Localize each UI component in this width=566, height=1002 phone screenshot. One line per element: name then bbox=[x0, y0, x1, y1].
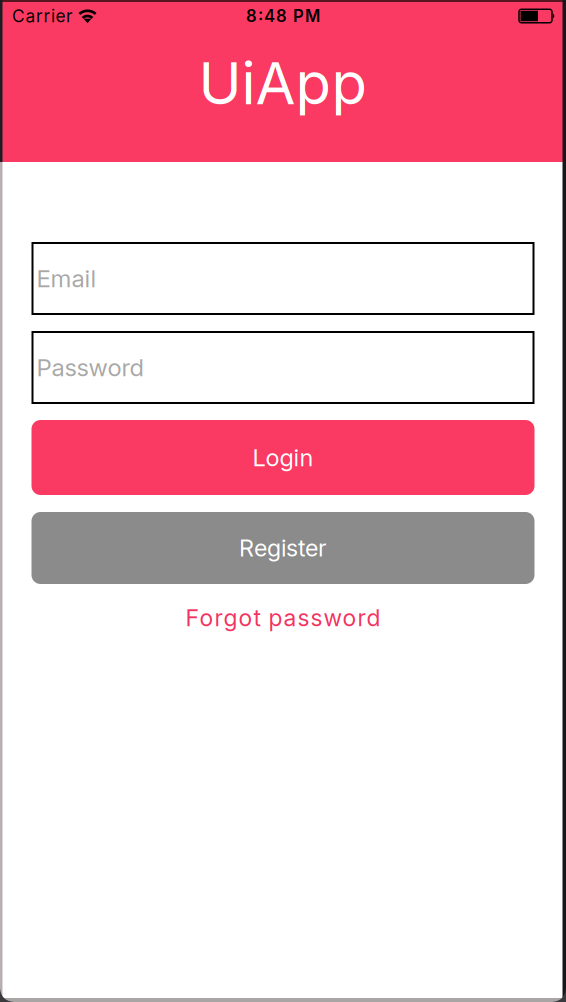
staticText: Password bbox=[36, 353, 143, 382]
staticText: Carrier bbox=[12, 5, 73, 26]
staticText: Email bbox=[36, 264, 96, 293]
button[interactable]: Password bbox=[31, 331, 534, 404]
button[interactable]: Login bbox=[31, 420, 534, 495]
staticText: 8:48 PM bbox=[246, 6, 320, 26]
button[interactable]: Register bbox=[31, 512, 534, 584]
staticText: Register bbox=[239, 534, 327, 562]
staticText: Login bbox=[252, 443, 313, 472]
staticText: Forgot password bbox=[185, 604, 380, 632]
staticText: UiApp bbox=[198, 48, 367, 118]
button[interactable]: Forgot password bbox=[143, 604, 423, 632]
button[interactable]: Email bbox=[31, 242, 534, 315]
